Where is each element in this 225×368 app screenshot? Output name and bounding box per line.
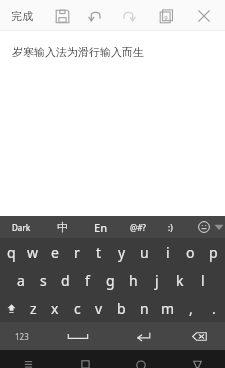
staticText: 完成 [11, 9, 33, 23]
staticText: y [118, 243, 126, 262]
button[interactable]: i [156, 238, 179, 266]
staticText: g [106, 271, 115, 290]
staticText: , [189, 299, 193, 318]
button[interactable]: w [22, 238, 44, 266]
button[interactable]: Home [113, 350, 169, 368]
button[interactable]: o [179, 238, 202, 266]
staticText: p [209, 243, 218, 262]
button[interactable]: Close [191, 3, 217, 29]
button[interactable]: Enter [112, 322, 174, 350]
button[interactable]: 完成 [8, 5, 36, 27]
staticText: m [161, 299, 175, 318]
button[interactable]: Menu [0, 350, 57, 368]
staticText: 岁寒输入法为滑行输入而生 [12, 45, 144, 59]
button[interactable]: Undo [82, 3, 108, 29]
button[interactable]: l [191, 266, 214, 294]
button[interactable]: y [110, 238, 133, 266]
button[interactable]: f [76, 266, 99, 294]
button[interactable]: Space [44, 322, 112, 350]
staticText: @#? [130, 222, 146, 233]
button[interactable]: z [22, 294, 44, 322]
button[interactable]: Redo [115, 3, 141, 29]
staticText: :) [168, 222, 173, 233]
button[interactable]: a [10, 266, 32, 294]
staticText: v [95, 299, 103, 318]
staticText: 123 [15, 331, 29, 342]
staticText: f [85, 271, 90, 290]
button[interactable]: Hide keyboard [213, 217, 225, 237]
staticText: s [40, 271, 47, 290]
staticText: 9 [164, 14, 168, 22]
button[interactable]: :) [166, 220, 175, 235]
staticText: t [96, 243, 102, 262]
staticText: k [176, 271, 184, 290]
button[interactable]: q [0, 238, 22, 266]
button[interactable]: h [122, 266, 145, 294]
staticText: l [201, 271, 205, 290]
button[interactable]: Windows [153, 3, 179, 29]
staticText: e [51, 243, 59, 262]
staticText: . [212, 299, 216, 318]
button[interactable]: 123 [0, 322, 44, 350]
button[interactable]: n [133, 294, 156, 322]
staticText: j [155, 271, 159, 290]
staticText: b [117, 299, 126, 318]
button[interactable]: t [88, 238, 110, 266]
button[interactable]: Backspace [174, 322, 225, 350]
button[interactable]: b [110, 294, 133, 322]
staticText: 中 [57, 220, 68, 234]
button[interactable]: En [92, 218, 110, 237]
staticText: d [61, 271, 70, 290]
staticText: En [94, 220, 108, 235]
button[interactable]: u [133, 238, 156, 266]
button[interactable]: Recents [57, 350, 113, 368]
staticText: n [140, 299, 149, 318]
button[interactable]: p [202, 238, 225, 266]
button[interactable]: e [44, 238, 66, 266]
button[interactable]: Emoji [195, 218, 213, 236]
button[interactable]: v [88, 294, 110, 322]
staticText: Dark [12, 222, 31, 233]
staticText: a [17, 271, 25, 290]
button[interactable]: d [54, 266, 76, 294]
button[interactable]: Dark [10, 220, 33, 235]
staticText: u [140, 243, 149, 262]
staticText: q [7, 243, 16, 262]
button[interactable]: j [145, 266, 168, 294]
staticText: c [74, 299, 81, 318]
button[interactable]: , [179, 294, 202, 322]
button[interactable]: s [32, 266, 54, 294]
button[interactable]: . [202, 294, 225, 322]
button[interactable]: g [99, 266, 122, 294]
button[interactable]: m [156, 294, 179, 322]
staticText: r [74, 243, 80, 262]
staticText: i [166, 243, 170, 262]
button[interactable]: @#? [128, 220, 148, 235]
button[interactable]: Back [169, 350, 225, 368]
button[interactable]: 中 [55, 218, 70, 236]
button[interactable]: x [44, 294, 66, 322]
staticText: h [129, 271, 138, 290]
button[interactable]: Shift [0, 294, 22, 322]
button[interactable]: r [66, 238, 88, 266]
staticText: o [186, 243, 195, 262]
button[interactable]: c [66, 294, 88, 322]
staticText: x [51, 299, 59, 318]
staticText: w [27, 243, 39, 262]
staticText: z [30, 299, 37, 318]
button[interactable]: Save [49, 3, 75, 29]
button[interactable]: k [168, 266, 191, 294]
